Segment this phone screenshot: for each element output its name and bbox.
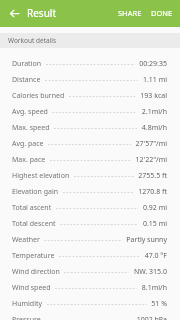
staticText: Elevation gain (12, 187, 59, 197)
staticText: 193 kcal (140, 91, 167, 101)
button[interactable]: Duration (0, 56, 180, 72)
staticText: Total descent (12, 219, 56, 229)
staticText: Partly sunny (126, 235, 167, 245)
staticText: Total ascent (12, 203, 52, 213)
staticText: 0.15 mi (142, 219, 167, 229)
staticText: Max. speed (12, 123, 50, 133)
staticText: Highest elevation (12, 171, 70, 181)
staticText: Avg. pace (12, 139, 44, 149)
staticText: NW. 315.0 (133, 267, 167, 277)
staticText: DONE (151, 8, 173, 18)
button[interactable]: DONE (146, 9, 180, 19)
button[interactable]: Avg. speed (0, 104, 180, 120)
staticText: 12'22"/mi (135, 155, 167, 165)
staticText: 00:29:35 (139, 59, 167, 69)
button[interactable]: Distance (0, 72, 180, 88)
staticText: 1270.8 ft (138, 187, 167, 197)
staticText: Calories burned (12, 91, 65, 101)
button[interactable]: Back (0, 0, 29, 27)
staticText: 2.1mi/h (141, 107, 167, 117)
staticText: 0.92 mi (142, 203, 167, 213)
button[interactable]: Highest elevation (0, 168, 180, 184)
staticText: 4.8mi/h (141, 123, 167, 133)
button[interactable]: Pressure (0, 312, 180, 320)
button[interactable]: Temperature (0, 248, 180, 264)
button[interactable]: Max. speed (0, 120, 180, 136)
button[interactable]: Max. pace (0, 152, 180, 168)
staticText: Max. pace (12, 155, 46, 165)
staticText: Duration (12, 59, 42, 69)
staticText: SHARE (118, 8, 142, 18)
button[interactable]: Total ascent (0, 200, 180, 216)
staticText: 2755.5 ft (138, 171, 167, 181)
button[interactable]: Calories burned (0, 88, 180, 104)
button[interactable]: SHARE (114, 9, 146, 19)
staticText: 51 % (151, 299, 167, 309)
staticText: Workout details (8, 36, 57, 45)
button[interactable]: Humidity (0, 296, 180, 312)
staticText: Avg. speed (12, 107, 48, 117)
staticText: 1.11 mi (142, 75, 167, 85)
button[interactable]: Total descent (0, 216, 180, 232)
staticText: Distance (12, 75, 41, 85)
button[interactable]: Weather (0, 232, 180, 248)
button[interactable]: Wind speed (0, 280, 180, 296)
staticText: Humidity (12, 299, 43, 309)
staticText: 27'57"/mi (135, 139, 167, 149)
staticText: Result (27, 6, 57, 20)
button[interactable]: Wind direction (0, 264, 180, 280)
staticText: 47.0 °F (144, 251, 167, 261)
button[interactable]: Elevation gain (0, 184, 180, 200)
staticText: Weather (12, 235, 40, 245)
staticText: 1002 hPa (136, 315, 167, 320)
staticText: Pressure (12, 315, 41, 320)
staticText: Wind speed (12, 283, 51, 293)
button[interactable]: Avg. pace (0, 136, 180, 152)
staticText: Wind direction (12, 267, 60, 277)
staticText: 8.1mi/h (141, 283, 167, 293)
staticText: Temperature (12, 251, 55, 261)
